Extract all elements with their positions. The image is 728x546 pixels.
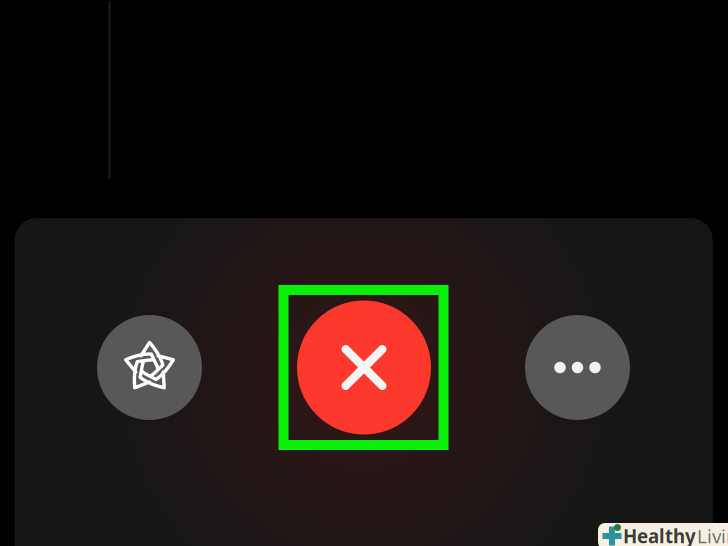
staticText: Healthy — [623, 524, 696, 546]
button[interactable]: Effects — [97, 315, 202, 420]
button[interactable]: More — [525, 315, 630, 420]
staticText: Living — [697, 524, 728, 546]
button[interactable]: End call — [297, 300, 431, 434]
